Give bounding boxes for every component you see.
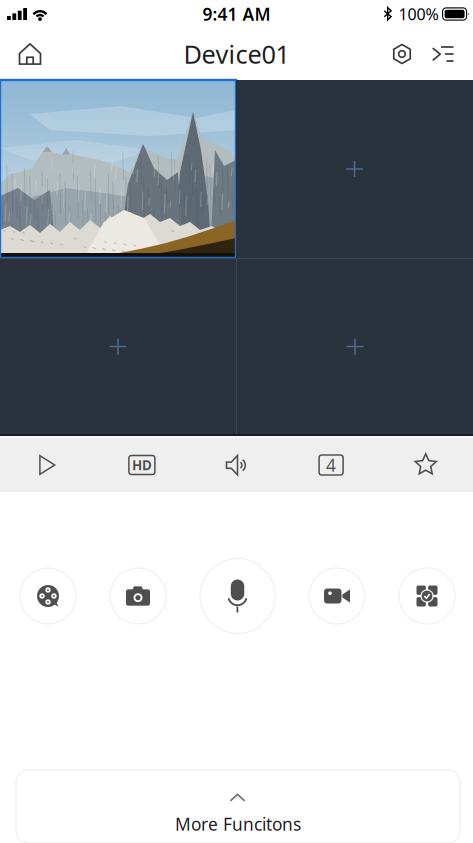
button[interactable]: More Funcitons <box>16 770 460 843</box>
button[interactable]: Settings <box>382 31 422 77</box>
staticText: 4 <box>326 453 336 476</box>
button[interactable]: Snapshot <box>110 568 166 624</box>
button[interactable]: Pan tilt zoom control <box>20 568 76 624</box>
button[interactable]: Four split view <box>284 438 378 492</box>
button[interactable]: Sound <box>189 438 284 492</box>
button[interactable]: Play <box>0 438 95 492</box>
button[interactable]: Talk <box>200 558 275 633</box>
staticText: 100% <box>398 3 438 25</box>
staticText: HD <box>132 456 152 474</box>
staticText: More Funcitons <box>175 812 301 835</box>
button[interactable]: Home <box>8 31 52 77</box>
staticText: Device01 <box>183 37 289 71</box>
staticText: 9:41 AM <box>202 2 270 25</box>
button[interactable]: Video quality HD <box>95 438 189 492</box>
button[interactable]: Device list <box>422 31 464 77</box>
button[interactable]: Favorite <box>378 438 473 492</box>
button[interactable]: Record <box>309 568 365 624</box>
button[interactable]: Multi view <box>399 568 455 624</box>
